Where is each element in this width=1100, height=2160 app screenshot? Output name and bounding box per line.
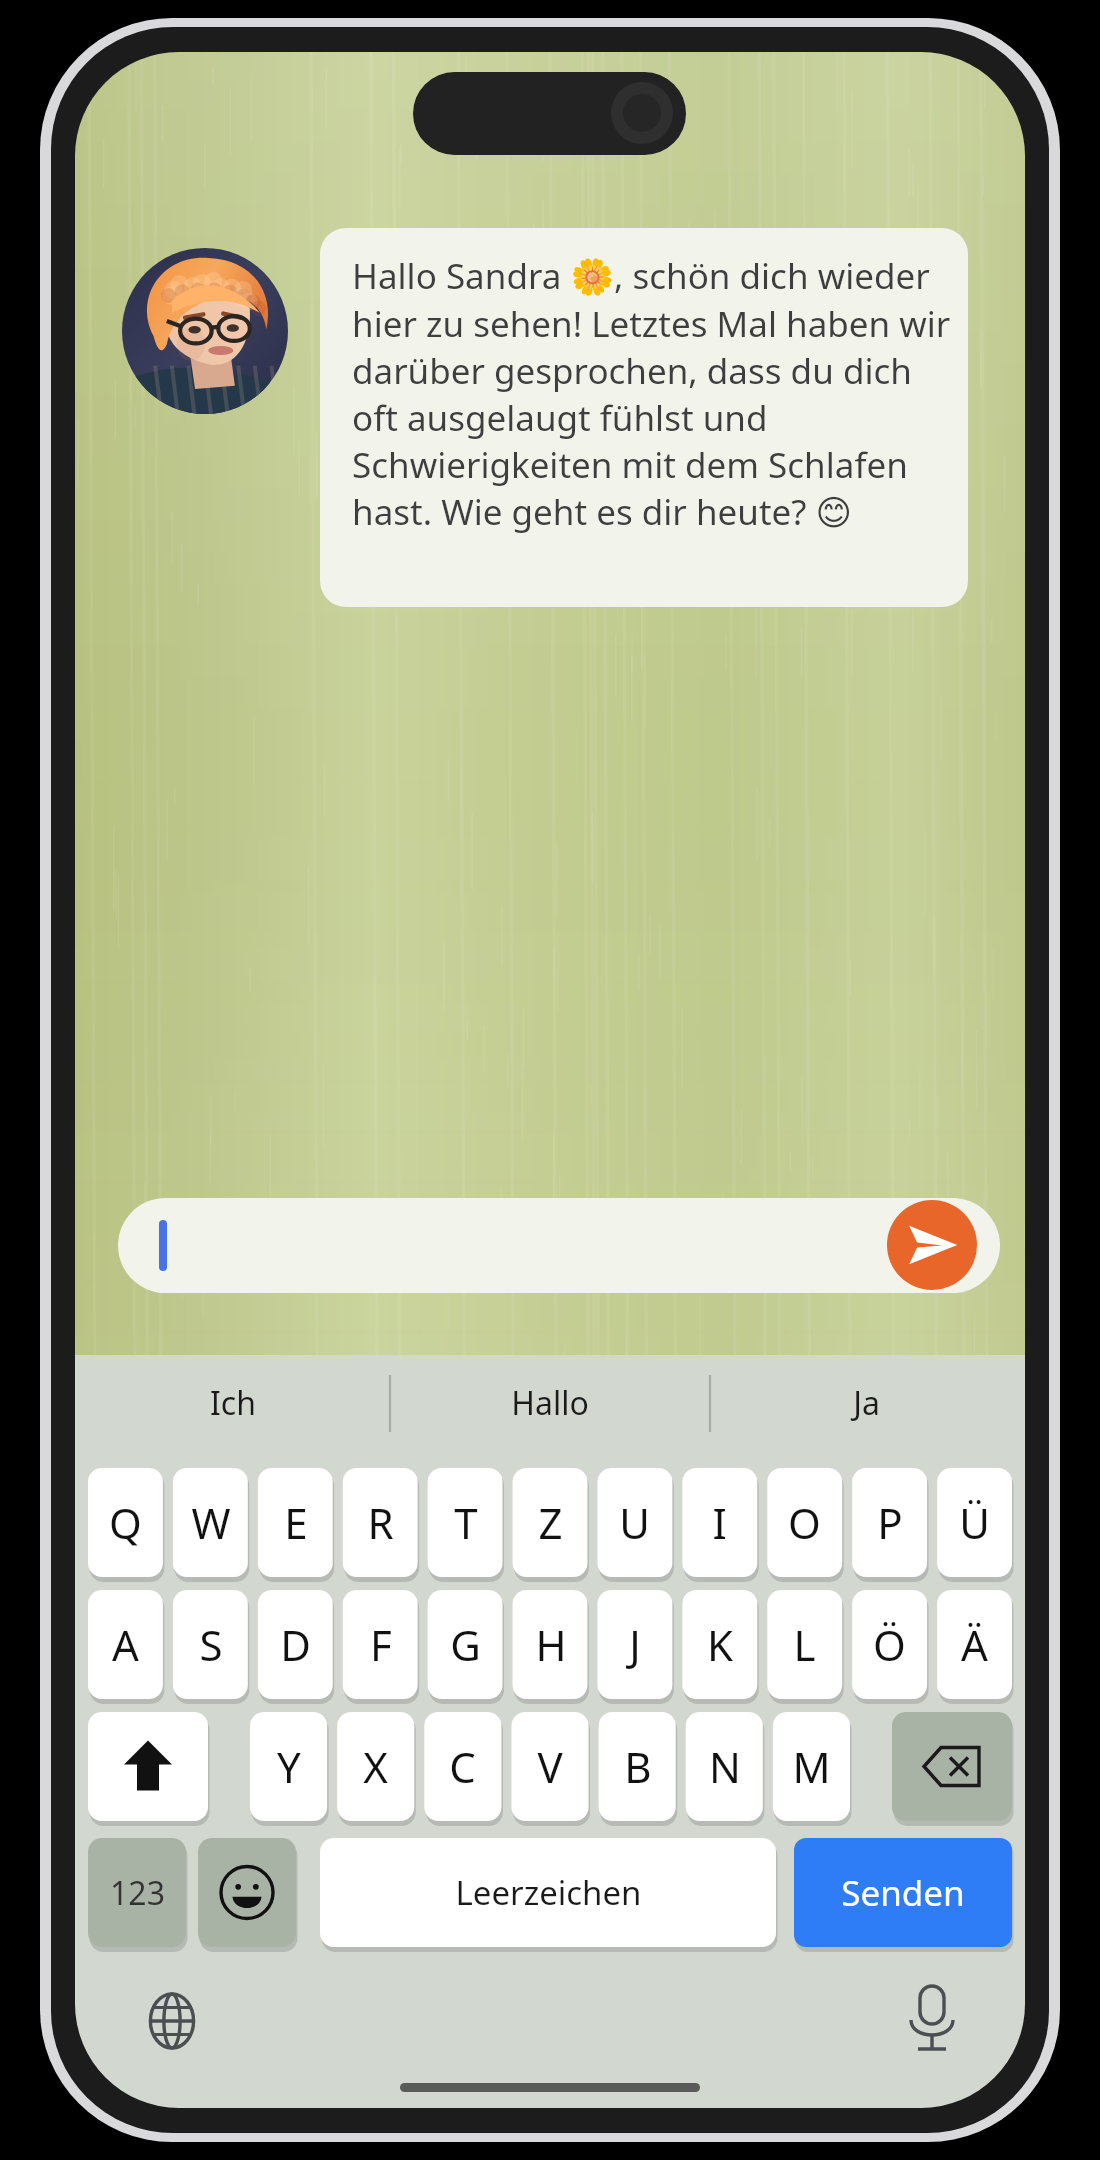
button[interactable]: P: [852, 1468, 927, 1577]
staticText: O: [788, 1494, 821, 1551]
button[interactable]: Spracheingabe: [892, 1981, 972, 2061]
button[interactable]: I: [682, 1468, 757, 1577]
staticText: Y: [277, 1738, 301, 1795]
staticText: D: [280, 1616, 311, 1673]
button[interactable]: Senden: [887, 1200, 977, 1290]
button[interactable]: K: [682, 1590, 757, 1699]
staticText: Hallo Sandra 🌼, schön dich wieder hier z…: [352, 252, 952, 536]
staticText: M: [792, 1738, 831, 1795]
button[interactable]: L: [767, 1590, 842, 1699]
button[interactable]: W: [173, 1468, 248, 1577]
button[interactable]: N: [686, 1712, 763, 1821]
button[interactable]: Löschen: [892, 1712, 1012, 1821]
staticText: Ich: [210, 1381, 256, 1425]
staticText: Ä: [961, 1616, 988, 1673]
button[interactable]: O: [767, 1468, 842, 1577]
button[interactable]: Nachricht eingeben: [118, 1198, 888, 1293]
staticText: I: [712, 1494, 727, 1551]
button[interactable]: D: [258, 1590, 333, 1699]
button[interactable]: A: [88, 1590, 163, 1699]
button[interactable]: G: [428, 1590, 503, 1699]
button[interactable]: Ö: [852, 1590, 927, 1699]
button[interactable]: Y: [250, 1712, 327, 1821]
button[interactable]: Emoji: [198, 1838, 296, 1947]
staticText: Z: [538, 1494, 563, 1551]
staticText: A: [112, 1616, 139, 1673]
button[interactable]: U: [597, 1468, 672, 1577]
button[interactable]: B: [599, 1712, 676, 1821]
staticText: Ü: [959, 1494, 990, 1551]
staticText: B: [624, 1738, 652, 1795]
staticText: P: [877, 1494, 903, 1551]
staticText: N: [709, 1738, 741, 1795]
staticText: C: [449, 1738, 476, 1795]
button[interactable]: S: [173, 1590, 248, 1699]
button[interactable]: C: [424, 1712, 501, 1821]
staticText: X: [363, 1738, 388, 1795]
button[interactable]: T: [428, 1468, 503, 1577]
button[interactable]: Umschalten: [88, 1712, 208, 1821]
staticText: G: [450, 1616, 481, 1673]
staticText: J: [629, 1616, 641, 1673]
staticText: T: [454, 1494, 478, 1551]
staticText: Q: [109, 1494, 142, 1551]
button[interactable]: Q: [88, 1468, 163, 1577]
staticText: R: [367, 1494, 394, 1551]
button[interactable]: J: [597, 1590, 672, 1699]
button[interactable]: H: [513, 1590, 588, 1699]
staticText: Ja: [853, 1381, 880, 1425]
button[interactable]: V: [511, 1712, 588, 1821]
staticText: Senden: [841, 1869, 965, 1917]
button[interactable]: Ich: [75, 1355, 391, 1451]
staticText: W: [191, 1494, 231, 1551]
staticText: S: [199, 1616, 223, 1673]
staticText: 123: [110, 1871, 165, 1915]
button[interactable]: M: [773, 1712, 850, 1821]
button[interactable]: Leerzeichen: [320, 1838, 776, 1947]
button[interactable]: X: [337, 1712, 414, 1821]
button[interactable]: Ä: [937, 1590, 1012, 1699]
staticText: E: [284, 1494, 308, 1551]
button[interactable]: E: [258, 1468, 333, 1577]
staticText: Leerzeichen: [455, 1870, 642, 1915]
staticText: Ö: [873, 1616, 906, 1673]
staticText: K: [707, 1616, 733, 1673]
staticText: V: [537, 1738, 563, 1795]
button[interactable]: Z: [513, 1468, 588, 1577]
button[interactable]: Senden: [794, 1838, 1012, 1947]
staticText: Hallo: [511, 1381, 589, 1425]
staticText: H: [535, 1616, 567, 1673]
button[interactable]: R: [343, 1468, 418, 1577]
button[interactable]: F: [343, 1590, 418, 1699]
staticText: F: [370, 1616, 392, 1673]
staticText: L: [793, 1616, 816, 1673]
button[interactable]: Ja: [708, 1355, 1025, 1451]
button[interactable]: Hallo: [391, 1355, 708, 1451]
button[interactable]: Ü: [937, 1468, 1012, 1577]
button[interactable]: Hallo Sandra 🌼, schön dich wieder hier z…: [352, 252, 952, 536]
button[interactable]: Zahlen: [88, 1838, 186, 1947]
button[interactable]: Tastatursprache wechseln: [132, 1981, 212, 2061]
staticText: U: [619, 1494, 650, 1551]
